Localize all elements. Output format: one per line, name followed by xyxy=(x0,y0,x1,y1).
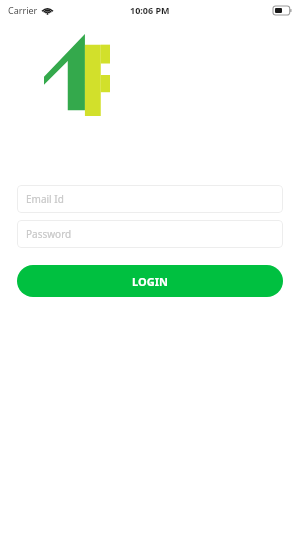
staticText: Password xyxy=(26,227,72,241)
staticText: Carrier xyxy=(8,4,38,16)
staticText: LOGIN xyxy=(132,274,168,289)
staticText: 10:06 PM xyxy=(130,4,170,16)
button[interactable]: Email Id xyxy=(17,185,283,213)
button[interactable]: LOGIN xyxy=(17,265,283,297)
button[interactable]: Password xyxy=(17,220,283,248)
staticText: Email Id xyxy=(26,192,64,206)
